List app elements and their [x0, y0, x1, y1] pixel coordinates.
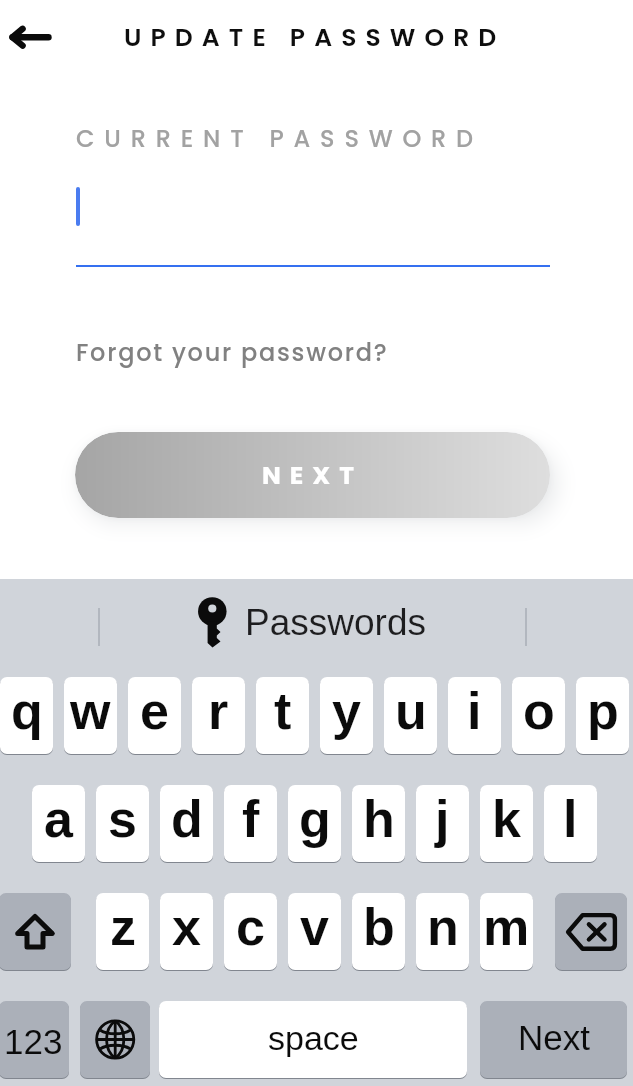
button[interactable]: Forgot your password? [76, 336, 389, 370]
staticText: a [44, 790, 73, 848]
button[interactable]: k [480, 785, 533, 862]
staticText: r [208, 682, 229, 740]
staticText: c [236, 898, 265, 956]
staticText: f [242, 790, 260, 848]
button[interactable]: y [320, 677, 373, 754]
staticText: n [427, 898, 459, 956]
staticText: j [435, 790, 450, 848]
button[interactable]: o [512, 677, 565, 754]
button[interactable]: b [352, 893, 405, 970]
button[interactable]: j [416, 785, 469, 862]
button[interactable]: t [256, 677, 309, 754]
staticText: UPDATE PASSWORD [124, 20, 506, 55]
button[interactable]: c [224, 893, 277, 970]
button[interactable]: m [480, 893, 533, 970]
button[interactable]: Change keyboard [80, 1001, 150, 1078]
button[interactable]: v [288, 893, 341, 970]
staticText: v [300, 898, 329, 956]
button[interactable]: n [416, 893, 469, 970]
button[interactable]: d [160, 785, 213, 862]
staticText: k [492, 790, 521, 848]
button[interactable]: space [159, 1001, 467, 1078]
staticText: q [11, 682, 43, 740]
staticText: u [395, 682, 427, 740]
button[interactable]: r [192, 677, 245, 754]
button[interactable]: Shift [0, 893, 71, 970]
staticText: z [110, 898, 136, 956]
staticText: s [108, 790, 137, 848]
button[interactable]: Passwords [190, 592, 436, 648]
staticText: g [299, 790, 331, 848]
staticText: w [70, 682, 111, 740]
staticText: Next [518, 1018, 590, 1057]
staticText: y [332, 682, 361, 740]
button[interactable]: h [352, 785, 405, 862]
staticText: NEXT [262, 458, 363, 493]
button[interactable]: l [544, 785, 597, 862]
button[interactable]: i [448, 677, 501, 754]
button[interactable]: Next [480, 1001, 627, 1078]
button[interactable]: q [0, 677, 53, 754]
staticText: x [172, 898, 201, 956]
button[interactable]: f [224, 785, 277, 862]
staticText: t [274, 682, 292, 740]
button[interactable]: NEXT [75, 432, 550, 518]
staticText: 123 [4, 1022, 63, 1061]
button[interactable]: g [288, 785, 341, 862]
staticText: space [268, 1019, 359, 1057]
button[interactable]: e [128, 677, 181, 754]
button[interactable]: Back [0, 10, 62, 62]
staticText: Passwords [245, 602, 426, 643]
staticText: CURRENT PASSWORD [76, 122, 483, 156]
button[interactable]: s [96, 785, 149, 862]
button[interactable]: p [576, 677, 629, 754]
staticText: d [171, 790, 203, 848]
button[interactable]: z [96, 893, 149, 970]
button[interactable]: Numbers and symbols [0, 1001, 69, 1078]
staticText: b [363, 898, 395, 956]
staticText: m [483, 898, 530, 956]
button[interactable]: w [64, 677, 117, 754]
button[interactable]: Backspace [555, 893, 627, 970]
button[interactable]: x [160, 893, 213, 970]
staticText: o [523, 682, 555, 740]
staticText: e [140, 682, 169, 740]
staticText: p [587, 682, 619, 740]
button[interactable]: u [384, 677, 437, 754]
button[interactable]: a [32, 785, 85, 862]
staticText: i [467, 682, 482, 740]
staticText: l [563, 790, 578, 848]
staticText: h [363, 790, 395, 848]
